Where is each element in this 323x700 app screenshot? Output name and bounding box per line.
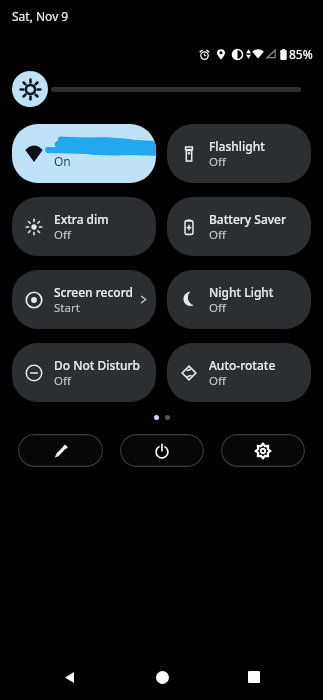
staticText: Sat, Nov 9 <box>12 8 69 24</box>
button[interactable]: Edit tiles <box>18 434 103 467</box>
button[interactable]: Recents <box>231 654 277 700</box>
button[interactable]: Settings <box>221 434 305 467</box>
button[interactable]: Flashlight <box>167 124 311 183</box>
staticText: On <box>54 153 71 169</box>
staticText: Battery Saver <box>209 211 287 227</box>
button[interactable]: Battery Saver <box>167 197 311 256</box>
staticText: Do Not Disturb <box>54 357 141 373</box>
staticText: Off <box>209 154 226 170</box>
button[interactable]: Night Light <box>167 270 311 329</box>
staticText: Start <box>54 300 80 316</box>
staticText: Off <box>209 300 226 316</box>
staticText: Flashlight <box>209 138 265 154</box>
button[interactable]: Auto-rotate <box>167 343 311 402</box>
button[interactable]: Power <box>120 434 204 467</box>
button[interactable]: On <box>12 124 156 183</box>
button[interactable]: Back <box>46 654 92 700</box>
staticText: Night Light <box>209 284 274 300</box>
staticText: Extra dim <box>54 211 109 227</box>
staticText: Off <box>54 373 71 389</box>
button[interactable]: Brightness <box>12 70 311 108</box>
button[interactable]: Home <box>139 654 185 700</box>
staticText: Off <box>209 373 226 389</box>
staticText: Auto-rotate <box>209 357 276 373</box>
staticText: Off <box>54 227 71 243</box>
button[interactable]: Extra dim <box>12 197 156 256</box>
staticText: Screen record <box>54 284 133 300</box>
button[interactable]: Do Not Disturb <box>12 343 156 402</box>
staticText: Off <box>209 227 226 243</box>
staticText: 85% <box>289 46 313 62</box>
button[interactable]: Screen record <box>12 270 156 329</box>
